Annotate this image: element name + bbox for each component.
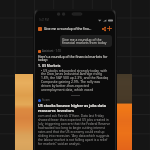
staticText: Assistant · 1:10 <box>42 49 61 53</box>
button[interactable]: New chat <box>107 26 112 31</box>
staticText: 1. US Markets <box>38 63 61 67</box>
staticText: US stocks bounce higher as jobs data rea… <box>38 103 112 113</box>
staticText: Give me a roundup of the financial marke… <box>62 37 110 45</box>
button[interactable]: Share <box>101 26 106 31</box>
staticText: Give me a roundup of the fina... <box>44 27 92 31</box>
staticText: Here's a roundup of the financial market… <box>38 54 112 62</box>
staticText: • US stocks rebounded strongly today, wi… <box>41 68 110 92</box>
staticText: com and ask Patrick O'Hare. Data last Fr… <box>38 114 112 146</box>
staticText: ft.com <box>42 98 50 102</box>
button[interactable]: App icon <box>38 27 42 31</box>
staticText: 9:41 PM <box>39 18 49 22</box>
button[interactable]: Give me a roundup of the financial marke… <box>60 35 112 47</box>
